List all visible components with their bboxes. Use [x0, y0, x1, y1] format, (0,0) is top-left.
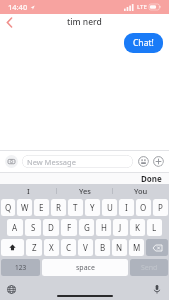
button[interactable]: V: [78, 239, 93, 256]
button[interactable]: C: [61, 239, 76, 256]
button[interactable]: 123: [1, 259, 40, 276]
staticText: O: [140, 202, 147, 213]
staticText: X: [49, 242, 54, 253]
staticText: W: [21, 202, 29, 213]
button[interactable]: W: [17, 199, 32, 216]
staticText: L: [152, 222, 157, 233]
button[interactable]: Shift: [1, 239, 24, 256]
staticText: K: [135, 222, 140, 233]
staticText: H: [101, 222, 107, 233]
staticText: 123: [15, 263, 27, 272]
button[interactable]: L: [147, 219, 162, 236]
button[interactable]: Voice input: [151, 284, 162, 295]
staticText: C: [66, 242, 72, 253]
button[interactable]: Q: [1, 199, 15, 216]
staticText: T: [73, 202, 78, 213]
button[interactable]: space: [42, 259, 128, 276]
button[interactable]: New Message: [22, 155, 133, 168]
staticText: 14:40: [8, 2, 28, 12]
staticText: P: [158, 202, 163, 213]
button[interactable]: Send: [130, 259, 168, 276]
button[interactable]: Back: [0, 14, 18, 30]
staticText: M: [133, 242, 141, 253]
button[interactable]: Camera: [5, 155, 18, 168]
button[interactable]: J: [113, 219, 128, 236]
button[interactable]: R: [51, 199, 66, 216]
button[interactable]: You: [113, 184, 169, 197]
button[interactable]: Y: [85, 199, 100, 216]
staticText: LTE: [137, 3, 147, 11]
staticText: Yes: [79, 186, 91, 196]
staticText: I: [27, 186, 30, 196]
button[interactable]: O: [136, 199, 151, 216]
button[interactable]: I: [119, 199, 134, 216]
button[interactable]: S: [25, 219, 41, 236]
staticText: Y: [90, 202, 95, 213]
button[interactable]: Done: [134, 172, 169, 184]
staticText: U: [107, 202, 113, 213]
button[interactable]: K: [130, 219, 145, 236]
staticText: F: [67, 222, 72, 233]
button[interactable]: N: [112, 239, 127, 256]
button[interactable]: Chat!: [124, 33, 163, 53]
staticText: E: [39, 202, 44, 213]
staticText: You: [134, 186, 148, 196]
staticText: B: [100, 242, 106, 253]
button[interactable]: I: [0, 184, 57, 197]
button[interactable]: G: [79, 219, 94, 236]
button[interactable]: Emoji: [137, 155, 149, 167]
button[interactable]: E: [34, 199, 49, 216]
button[interactable]: Z: [26, 239, 42, 256]
button[interactable]: X: [44, 239, 59, 256]
staticText: Chat!: [133, 37, 154, 49]
staticText: N: [116, 242, 123, 253]
button[interactable]: H: [96, 219, 111, 236]
button[interactable]: Yes: [57, 184, 113, 197]
staticText: Z: [32, 242, 37, 253]
button[interactable]: B: [95, 239, 110, 256]
button[interactable]: P: [153, 199, 168, 216]
button[interactable]: M: [129, 239, 144, 256]
button[interactable]: Backspace: [146, 239, 168, 256]
staticText: space: [76, 263, 95, 273]
button[interactable]: Change keyboard language: [6, 284, 17, 295]
staticText: D: [48, 222, 54, 233]
button[interactable]: More options: [152, 155, 164, 167]
staticText: J: [119, 222, 122, 233]
staticText: tim nerd: [67, 16, 102, 28]
button[interactable]: A: [7, 219, 23, 236]
staticText: Q: [5, 202, 12, 213]
staticText: G: [84, 222, 90, 233]
staticText: S: [31, 222, 36, 233]
staticText: New Message: [27, 157, 76, 167]
staticText: A: [12, 222, 18, 233]
staticText: V: [83, 242, 88, 253]
staticText: Done: [141, 173, 162, 183]
button[interactable]: T: [68, 199, 83, 216]
button[interactable]: D: [43, 219, 59, 236]
staticText: I: [125, 202, 128, 213]
staticText: Send: [141, 263, 158, 273]
button[interactable]: U: [102, 199, 117, 216]
staticText: R: [56, 202, 61, 213]
button[interactable]: F: [61, 219, 77, 236]
